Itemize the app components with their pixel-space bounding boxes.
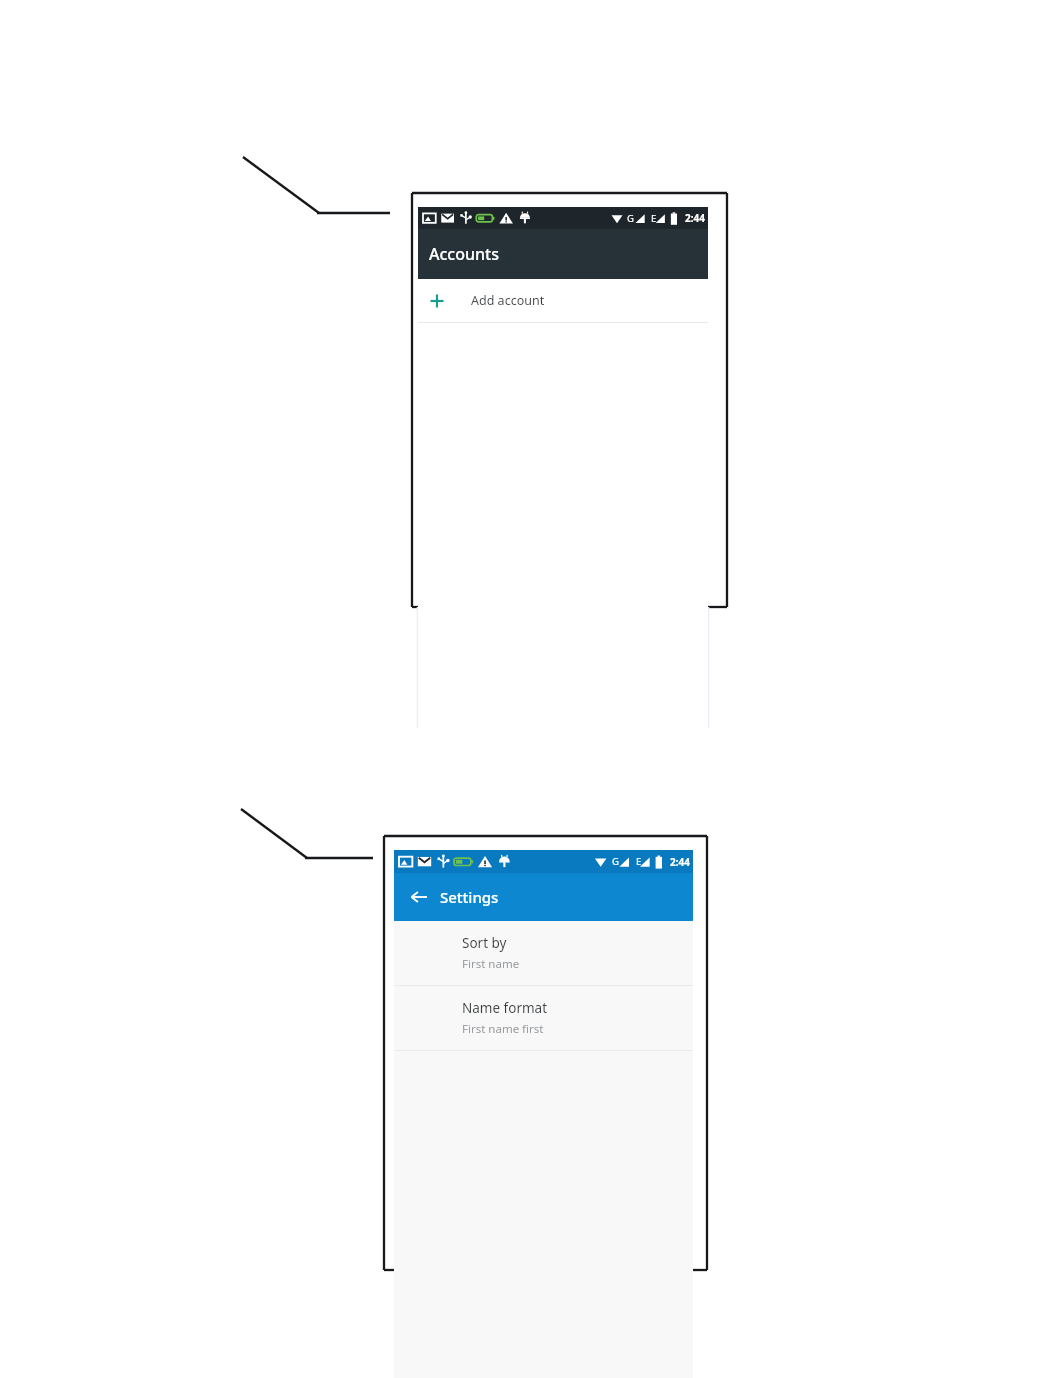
staticText: E (636, 855, 642, 868)
staticText: Sort by (462, 934, 507, 952)
button[interactable]: Sort by (394, 921, 693, 986)
staticText: E (651, 212, 657, 225)
staticText: 2:44 (685, 211, 705, 225)
staticText: First name first (462, 1021, 544, 1037)
staticText: Accounts (429, 243, 499, 265)
staticText: 2:44 (670, 855, 690, 869)
staticText: First name (462, 956, 520, 972)
staticText: G (627, 212, 634, 225)
button[interactable]: Accounts (418, 229, 708, 279)
staticText: Settings (440, 887, 499, 907)
staticText: G (612, 855, 619, 868)
button[interactable]: Name format (394, 986, 693, 1051)
button[interactable]: Add account (418, 279, 708, 322)
staticText: Name format (462, 999, 548, 1017)
staticText: Add account (471, 292, 545, 309)
button[interactable]: Back (403, 881, 435, 913)
